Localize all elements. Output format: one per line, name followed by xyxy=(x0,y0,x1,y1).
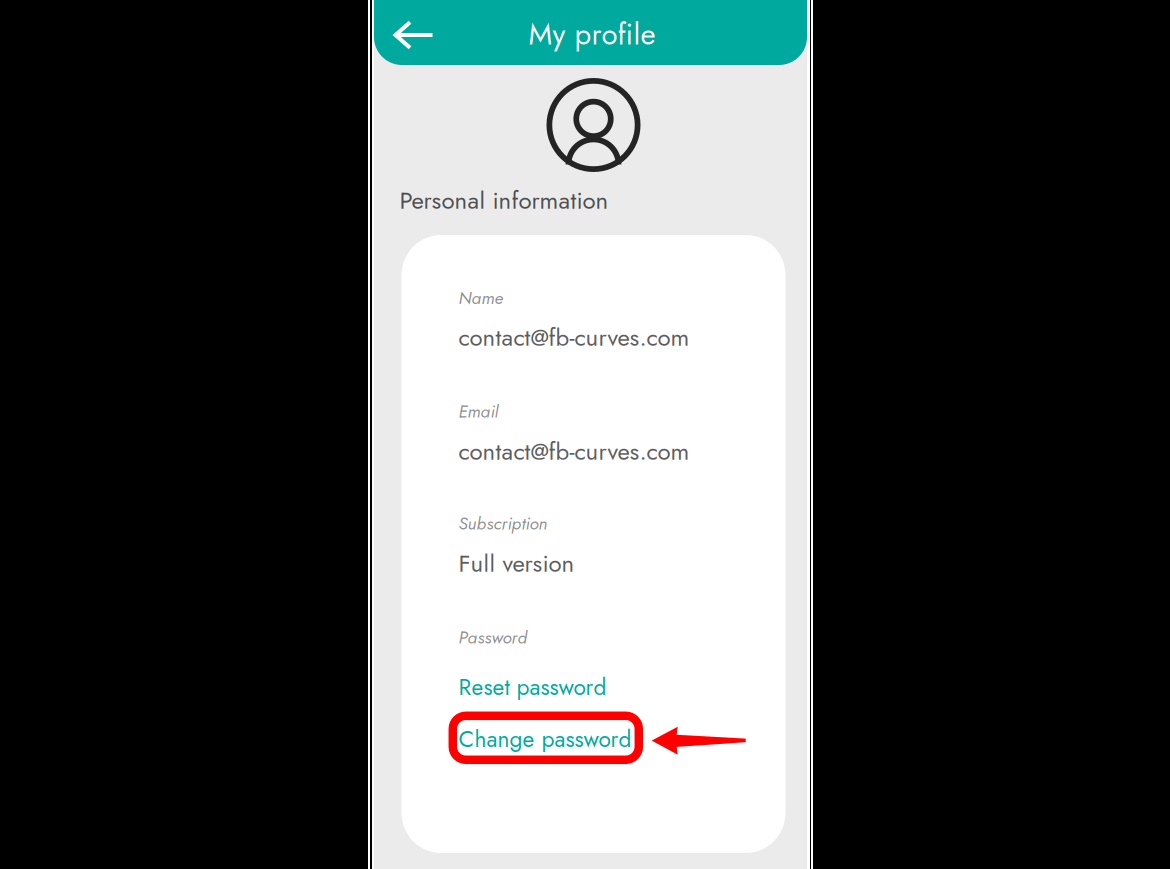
staticText: My profile xyxy=(528,13,655,55)
staticText: Personal information xyxy=(399,183,608,218)
staticText: Password xyxy=(458,625,527,650)
staticText: Full version xyxy=(458,546,574,581)
staticText: Email xyxy=(458,399,498,424)
staticText: Reset password xyxy=(458,671,606,703)
staticText: Subscription xyxy=(458,511,547,536)
staticText: Name xyxy=(458,285,503,310)
staticText: contact@fb-curves.com xyxy=(458,320,689,355)
button[interactable]: Reset password xyxy=(458,672,728,702)
staticText: contact@fb-curves.com xyxy=(458,434,689,469)
staticText: Change password xyxy=(458,723,631,755)
button[interactable]: Back xyxy=(382,8,446,62)
button[interactable]: Change password xyxy=(458,724,728,754)
